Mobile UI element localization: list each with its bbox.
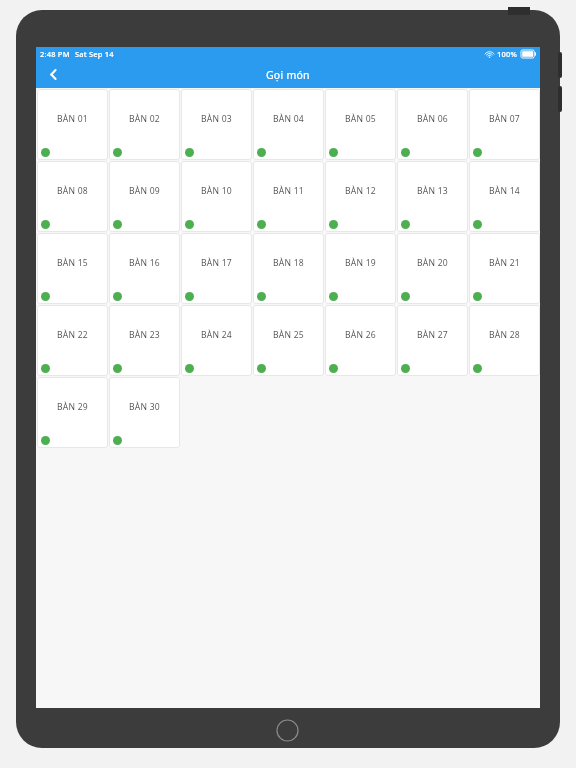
button[interactable]: BÀN 25 — [253, 305, 324, 376]
staticText: 2:48 PM — [40, 49, 70, 59]
staticText: BÀN 27 — [397, 329, 468, 341]
button[interactable]: BÀN 08 — [37, 161, 108, 232]
staticText: BÀN 26 — [325, 329, 396, 341]
staticText: BÀN 04 — [253, 113, 324, 125]
button[interactable]: BÀN 06 — [397, 89, 468, 160]
staticText: Gọi món — [266, 68, 310, 82]
staticText: BÀN 22 — [37, 329, 108, 341]
button[interactable]: BÀN 24 — [181, 305, 252, 376]
staticText: BÀN 09 — [109, 185, 180, 197]
button[interactable]: Home — [276, 719, 299, 742]
staticText: BÀN 19 — [325, 257, 396, 269]
staticText: BÀN 03 — [181, 113, 252, 125]
button[interactable]: BÀN 28 — [469, 305, 540, 376]
staticText: 100% — [497, 49, 518, 59]
button[interactable]: BÀN 18 — [253, 233, 324, 304]
staticText: BÀN 17 — [181, 257, 252, 269]
button[interactable]: BÀN 13 — [397, 161, 468, 232]
staticText: BÀN 28 — [469, 329, 540, 341]
button[interactable]: BÀN 29 — [37, 377, 108, 448]
staticText: BÀN 14 — [469, 185, 540, 197]
staticText: BÀN 15 — [37, 257, 108, 269]
staticText: BÀN 29 — [37, 401, 108, 413]
staticText: BÀN 11 — [253, 185, 324, 197]
button[interactable]: BÀN 19 — [325, 233, 396, 304]
button[interactable]: BÀN 01 — [37, 89, 108, 160]
button[interactable]: BÀN 21 — [469, 233, 540, 304]
button[interactable]: BÀN 23 — [109, 305, 180, 376]
button[interactable]: BÀN 07 — [469, 89, 540, 160]
staticText: BÀN 23 — [109, 329, 180, 341]
staticText: BÀN 24 — [181, 329, 252, 341]
button[interactable]: BÀN 11 — [253, 161, 324, 232]
staticText: BÀN 01 — [37, 113, 108, 125]
button[interactable]: BÀN 12 — [325, 161, 396, 232]
staticText: BÀN 07 — [469, 113, 540, 125]
staticText: Sat Sep 14 — [75, 49, 114, 59]
button[interactable]: BÀN 10 — [181, 161, 252, 232]
button[interactable]: BÀN 16 — [109, 233, 180, 304]
staticText: BÀN 20 — [397, 257, 468, 269]
staticText: BÀN 12 — [325, 185, 396, 197]
staticText: BÀN 18 — [253, 257, 324, 269]
button[interactable]: BÀN 26 — [325, 305, 396, 376]
button[interactable]: BÀN 30 — [109, 377, 180, 448]
button[interactable]: BÀN 02 — [109, 89, 180, 160]
staticText: BÀN 25 — [253, 329, 324, 341]
button[interactable]: BÀN 03 — [181, 89, 252, 160]
button[interactable]: BÀN 15 — [37, 233, 108, 304]
staticText: BÀN 08 — [37, 185, 108, 197]
button[interactable]: BÀN 04 — [253, 89, 324, 160]
button[interactable]: BÀN 14 — [469, 161, 540, 232]
staticText: BÀN 21 — [469, 257, 540, 269]
button[interactable]: BÀN 22 — [37, 305, 108, 376]
staticText: BÀN 30 — [109, 401, 180, 413]
staticText: BÀN 06 — [397, 113, 468, 125]
button[interactable]: BÀN 05 — [325, 89, 396, 160]
button[interactable]: BÀN 20 — [397, 233, 468, 304]
button[interactable]: Back — [36, 61, 70, 88]
staticText: BÀN 10 — [181, 185, 252, 197]
staticText: BÀN 13 — [397, 185, 468, 197]
button[interactable]: BÀN 17 — [181, 233, 252, 304]
staticText: BÀN 16 — [109, 257, 180, 269]
staticText: BÀN 05 — [325, 113, 396, 125]
staticText: BÀN 02 — [109, 113, 180, 125]
button[interactable]: BÀN 09 — [109, 161, 180, 232]
button[interactable]: BÀN 27 — [397, 305, 468, 376]
